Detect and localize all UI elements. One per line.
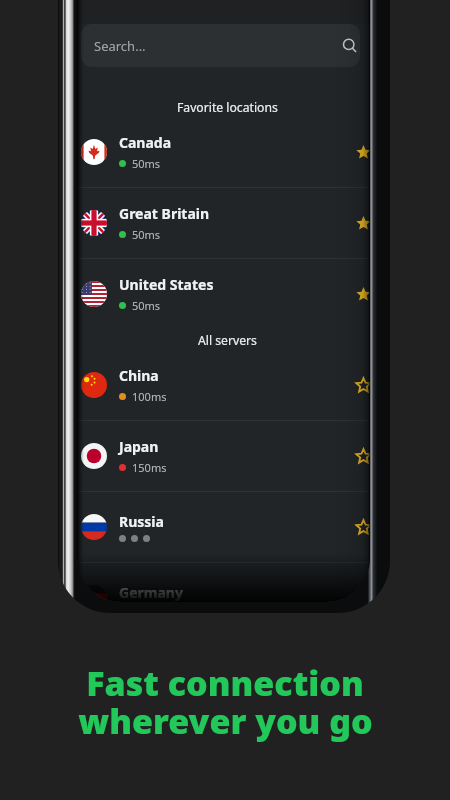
staticText: Canada: [119, 133, 172, 152]
staticText: Fast connection: [86, 660, 364, 706]
staticText: Search...: [94, 37, 146, 55]
button[interactable]: Search: [334, 30, 360, 62]
staticText: 50ms: [132, 156, 161, 171]
button[interactable]: Favorite: [348, 441, 370, 471]
button[interactable]: Favorite: [348, 370, 370, 400]
button[interactable]: Japan: [77, 421, 370, 491]
staticText: China: [119, 366, 159, 385]
button[interactable]: Favorite: [348, 208, 370, 238]
staticText: 150ms: [132, 460, 167, 475]
staticText: Great Britain: [119, 204, 210, 223]
staticText: All servers: [198, 332, 257, 349]
staticText: 50ms: [132, 227, 161, 242]
button[interactable]: Search...: [81, 24, 360, 67]
button[interactable]: Favorite: [348, 137, 370, 167]
button[interactable]: Favorite: [348, 583, 370, 602]
button[interactable]: Favorite: [348, 512, 370, 542]
staticText: Japan: [119, 437, 159, 456]
staticText: Germany: [119, 583, 183, 602]
staticText: United States: [119, 275, 214, 294]
button[interactable]: United States: [77, 259, 370, 329]
button[interactable]: Germany: [77, 563, 370, 602]
staticText: 100ms: [132, 389, 167, 404]
staticText: Favorite locations: [177, 99, 278, 116]
button[interactable]: Canada: [77, 117, 370, 187]
button[interactable]: China: [77, 350, 370, 420]
button[interactable]: Great Britain: [77, 188, 370, 258]
staticText: wherever you go: [78, 698, 373, 744]
staticText: Russia: [119, 512, 164, 531]
button[interactable]: Russia: [77, 492, 370, 562]
staticText: 50ms: [132, 298, 161, 313]
button[interactable]: Favorite: [348, 279, 370, 309]
